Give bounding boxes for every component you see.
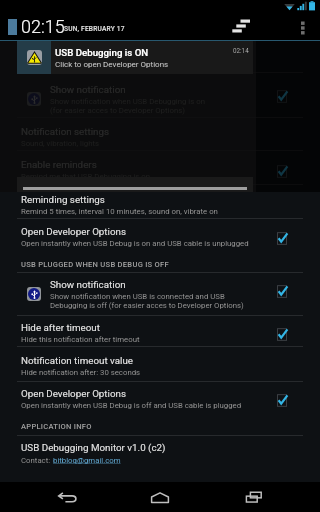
button[interactable]: Show notification xyxy=(0,273,320,316)
button[interactable]: Hide after timeout xyxy=(0,316,320,347)
button[interactable]: Home xyxy=(133,482,187,512)
staticText: Hide notification after: 30 seconds xyxy=(21,368,141,377)
staticText: Enable reminders xyxy=(21,159,97,170)
button[interactable]: Open Developer Options xyxy=(0,382,320,416)
staticText: APPLICATION INFO xyxy=(21,422,92,431)
button[interactable]: Quick settings xyxy=(232,19,250,34)
staticText: bitbloq@gmail.com xyxy=(53,456,121,465)
staticText: USB DEBUGGING IS ON xyxy=(21,59,106,68)
staticText: 02:14 xyxy=(233,47,249,54)
staticText: Remind 5 times, interval 10 minutes, sou… xyxy=(21,207,218,216)
staticText: Hide after timeout xyxy=(21,322,100,333)
button[interactable]: Reminding settings xyxy=(0,185,320,219)
staticText: SUN, FEBRUARY 17 xyxy=(64,25,125,33)
button[interactable]: More options xyxy=(297,20,309,36)
staticText: USB PLUGGED WHEN USB DEBUG IS OFF xyxy=(21,260,169,269)
staticText: Show notification xyxy=(50,279,126,290)
staticText: Click to open Developer Options xyxy=(55,60,169,69)
button[interactable]: USB Debugging is ON xyxy=(17,41,253,74)
staticText: USB Debugging is ON xyxy=(55,47,149,58)
button[interactable]: Show notification xyxy=(0,73,320,118)
staticText: Open Developer Options xyxy=(21,226,127,237)
staticText: Remind me that USB Debugging is on xyxy=(21,172,151,181)
staticText: Notification settings xyxy=(21,126,110,137)
staticText: Sound, vibration, lights xyxy=(21,139,100,148)
staticText: Show notification xyxy=(50,84,126,95)
button[interactable]: Recent apps xyxy=(227,482,281,512)
staticText: Show notification when USB Debugging is … xyxy=(50,97,205,115)
staticText: Notification timeout value xyxy=(21,355,134,366)
staticText: USB Debugging Monitor v1.0 (c2) xyxy=(21,442,166,453)
staticText: Hide this notification after timeout xyxy=(21,335,140,344)
button[interactable]: Notification timeout value xyxy=(0,347,320,382)
button[interactable]: Back xyxy=(40,482,94,512)
button[interactable]: Open Developer Options xyxy=(0,219,320,254)
staticText: Open instantly when USB Debug is off and… xyxy=(21,401,242,410)
button[interactable]: Enable reminders xyxy=(0,151,320,185)
staticText: Contact: xyxy=(21,456,53,465)
button[interactable]: USB Debugging Monitor v1.0 (c2) xyxy=(0,436,320,472)
staticText: Open instantly when USB Debug is on and … xyxy=(21,239,249,248)
staticText: Open Developer Options xyxy=(21,388,127,399)
staticText: 02:15 xyxy=(21,16,65,37)
staticText: Show notification when USB is connected … xyxy=(50,292,244,310)
staticText: Reminding settings xyxy=(21,194,105,205)
button[interactable]: Notification settings xyxy=(0,118,320,151)
